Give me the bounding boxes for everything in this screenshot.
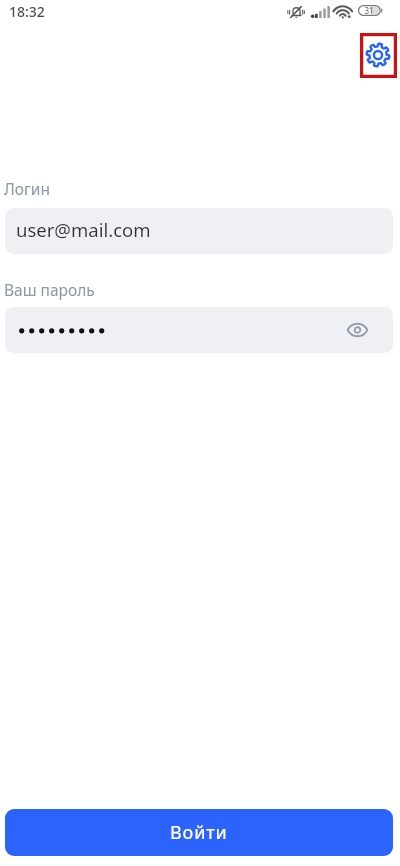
staticText: 18:32	[9, 2, 45, 21]
staticText: 31	[364, 5, 374, 16]
button[interactable]: Show password	[339, 310, 375, 350]
button[interactable]: Show password	[5, 307, 393, 353]
staticText: user@mail.com	[16, 217, 151, 242]
button[interactable]: Войти	[5, 809, 393, 856]
staticText: Логин	[4, 178, 50, 199]
button[interactable]: user@mail.com	[5, 208, 393, 254]
staticText: Ваш пароль	[4, 279, 95, 300]
button[interactable]: Settings	[360, 33, 397, 78]
staticText: Войти	[170, 820, 228, 845]
